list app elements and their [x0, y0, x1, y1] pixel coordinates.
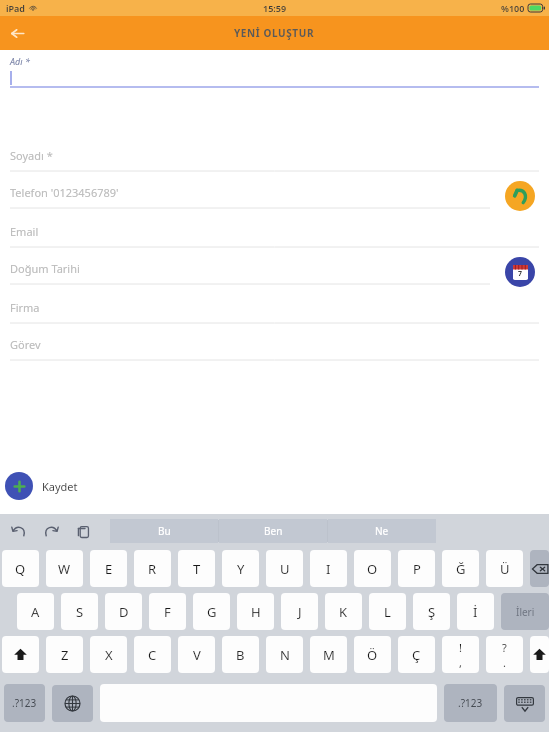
staticText: H — [251, 603, 261, 621]
button[interactable]: F — [149, 593, 186, 630]
button[interactable]: Z — [46, 636, 83, 673]
staticText: O — [367, 560, 378, 578]
button[interactable]: H — [237, 593, 274, 630]
button[interactable]: Ş — [413, 593, 450, 630]
button[interactable]: E — [90, 550, 127, 587]
button[interactable]: Doğum Tarihi — [0, 258, 549, 288]
button[interactable]: İ — [457, 593, 494, 630]
staticText: Görev — [10, 337, 41, 352]
button[interactable]: V — [178, 636, 215, 673]
staticText: Q — [15, 560, 26, 578]
button[interactable]: Redo — [40, 520, 62, 542]
button[interactable]: Kaydet — [0, 465, 549, 507]
staticText: Email — [10, 224, 39, 239]
staticText: Z — [61, 646, 69, 664]
button[interactable]: N — [266, 636, 303, 673]
staticText: M — [323, 646, 335, 664]
staticText: Adı * — [10, 55, 30, 67]
button[interactable]: C — [134, 636, 171, 673]
button[interactable]: Telefon '0123456789' — [0, 182, 549, 212]
staticText: Ne — [375, 524, 389, 538]
button[interactable]: Ne — [328, 519, 436, 543]
button[interactable]: D — [105, 593, 142, 630]
button[interactable]: Ben — [219, 519, 327, 543]
button[interactable]: Call — [505, 181, 535, 211]
staticText: U — [280, 560, 290, 578]
button[interactable]: I — [310, 550, 347, 587]
staticText: %100 — [501, 2, 525, 14]
button[interactable]: Ç — [398, 636, 435, 673]
button[interactable]: R — [134, 550, 171, 587]
button[interactable]: Firma — [0, 297, 549, 327]
staticText: F — [164, 603, 171, 621]
button[interactable]: X — [90, 636, 127, 673]
button[interactable]: Y — [222, 550, 259, 587]
button[interactable]: Ü — [486, 550, 523, 587]
button[interactable]: Undo — [8, 520, 30, 542]
staticText: A — [31, 603, 40, 621]
button[interactable]: Görev — [0, 334, 549, 364]
staticText: ! — [459, 640, 462, 655]
staticText: 15:59 — [263, 2, 287, 14]
button[interactable]: A — [17, 593, 54, 630]
staticText: R — [148, 560, 157, 578]
staticText: N — [280, 646, 290, 664]
button[interactable]: J — [281, 593, 318, 630]
staticText: Y — [237, 560, 245, 578]
button[interactable]: Key — [530, 550, 549, 587]
button[interactable]: ! — [442, 636, 479, 673]
staticText: Kaydet — [42, 479, 78, 494]
button[interactable]: B — [222, 636, 259, 673]
staticText: Ö — [367, 646, 378, 664]
button[interactable]: Key — [504, 685, 545, 722]
staticText: .?123 — [458, 696, 483, 710]
staticText: , — [459, 655, 462, 670]
button[interactable]: Pick date — [505, 257, 535, 287]
button[interactable]: İleri — [501, 593, 549, 630]
staticText: Firma — [10, 300, 40, 315]
staticText: iPad — [6, 2, 25, 14]
button[interactable]: S — [61, 593, 98, 630]
button[interactable]: Q — [2, 550, 39, 587]
staticText: B — [236, 646, 245, 664]
button[interactable]: .?123 — [444, 684, 497, 722]
staticText: Soyadı * — [10, 148, 53, 163]
button[interactable]: Key — [52, 685, 93, 722]
staticText: J — [298, 603, 302, 621]
button[interactable]: Shift — [2, 636, 39, 673]
button[interactable]: Adı * — [0, 54, 549, 92]
button[interactable]: P — [398, 550, 435, 587]
staticText: T — [193, 560, 201, 578]
button[interactable]: Ö — [354, 636, 391, 673]
staticText: . — [503, 655, 506, 670]
button[interactable]: O — [354, 550, 391, 587]
button[interactable]: Back — [0, 16, 34, 50]
button[interactable]: Shift — [530, 636, 549, 673]
staticText: K — [339, 603, 348, 621]
staticText: S — [76, 603, 84, 621]
button[interactable]: Email — [0, 221, 549, 251]
button[interactable]: K — [325, 593, 362, 630]
button[interactable]: Soyadı * — [0, 145, 549, 175]
button[interactable]: Ğ — [442, 550, 479, 587]
button[interactable]: ? — [486, 636, 523, 673]
staticText: Ğ — [456, 560, 466, 578]
staticText: Ş — [428, 603, 436, 621]
button[interactable]: Paste — [72, 520, 94, 542]
staticText: YENİ OLUŞTUR — [234, 26, 315, 40]
staticText: ? — [502, 640, 507, 655]
staticText: P — [413, 560, 421, 578]
staticText: L — [384, 603, 391, 621]
button[interactable]: L — [369, 593, 406, 630]
button[interactable]: Bu — [110, 519, 218, 543]
button[interactable]: G — [193, 593, 230, 630]
button[interactable]: M — [310, 636, 347, 673]
staticText: X — [105, 646, 113, 664]
button[interactable]: U — [266, 550, 303, 587]
button[interactable]: .?123 — [4, 684, 45, 722]
button[interactable]: W — [46, 550, 83, 587]
staticText: 7 — [518, 269, 523, 279]
button[interactable]: T — [178, 550, 215, 587]
staticText: C — [148, 646, 157, 664]
